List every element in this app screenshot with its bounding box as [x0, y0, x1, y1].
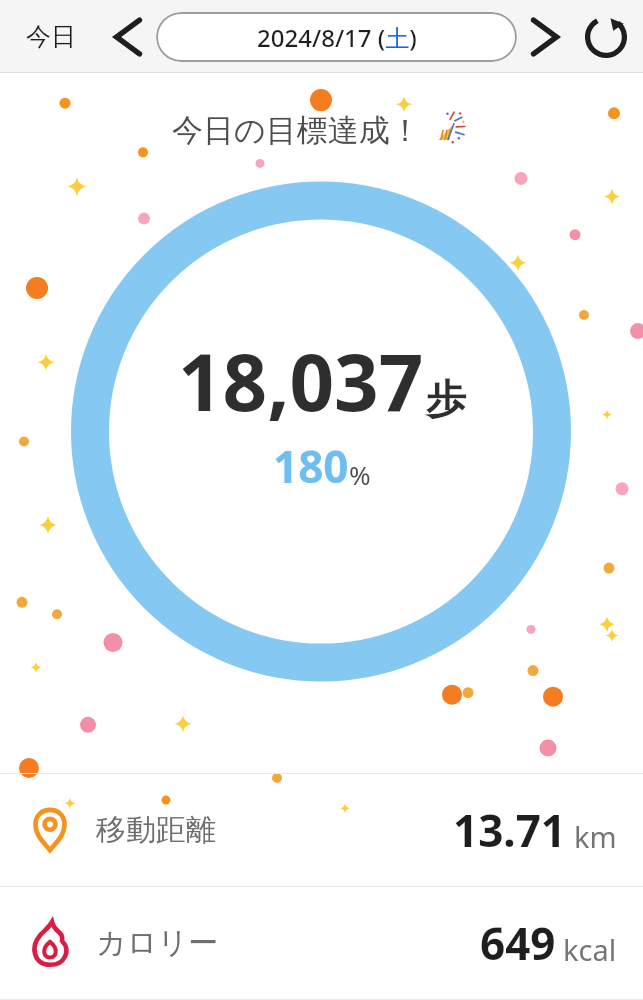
button[interactable]: Next day — [523, 15, 567, 59]
staticText: % — [349, 457, 371, 492]
button[interactable]: 今日 — [14, 13, 88, 60]
other: Calories — [26, 919, 74, 967]
staticText: km — [574, 817, 617, 856]
staticText: kcal — [563, 930, 617, 969]
staticText: 今日の目標達成！ — [172, 111, 421, 150]
button[interactable]: Refresh — [583, 14, 629, 60]
button[interactable]: 2024/8/17 (土) — [156, 12, 517, 62]
staticText: 2024/8/17 (土) — [257, 21, 417, 54]
staticText: 18,037 — [178, 328, 424, 434]
other: Distance — [26, 806, 74, 854]
staticText: 180 — [273, 436, 349, 496]
staticText: 歩 — [426, 374, 466, 424]
staticText: 今日 — [26, 21, 76, 52]
staticText: カロリー — [96, 924, 219, 962]
button[interactable]: Distance — [0, 774, 643, 886]
button[interactable]: Previous day — [106, 15, 150, 59]
staticText: 649 — [480, 913, 556, 973]
staticText: 移動距離 — [96, 811, 216, 849]
staticText: 13.71 — [453, 800, 567, 860]
button[interactable]: Calories — [0, 887, 643, 999]
